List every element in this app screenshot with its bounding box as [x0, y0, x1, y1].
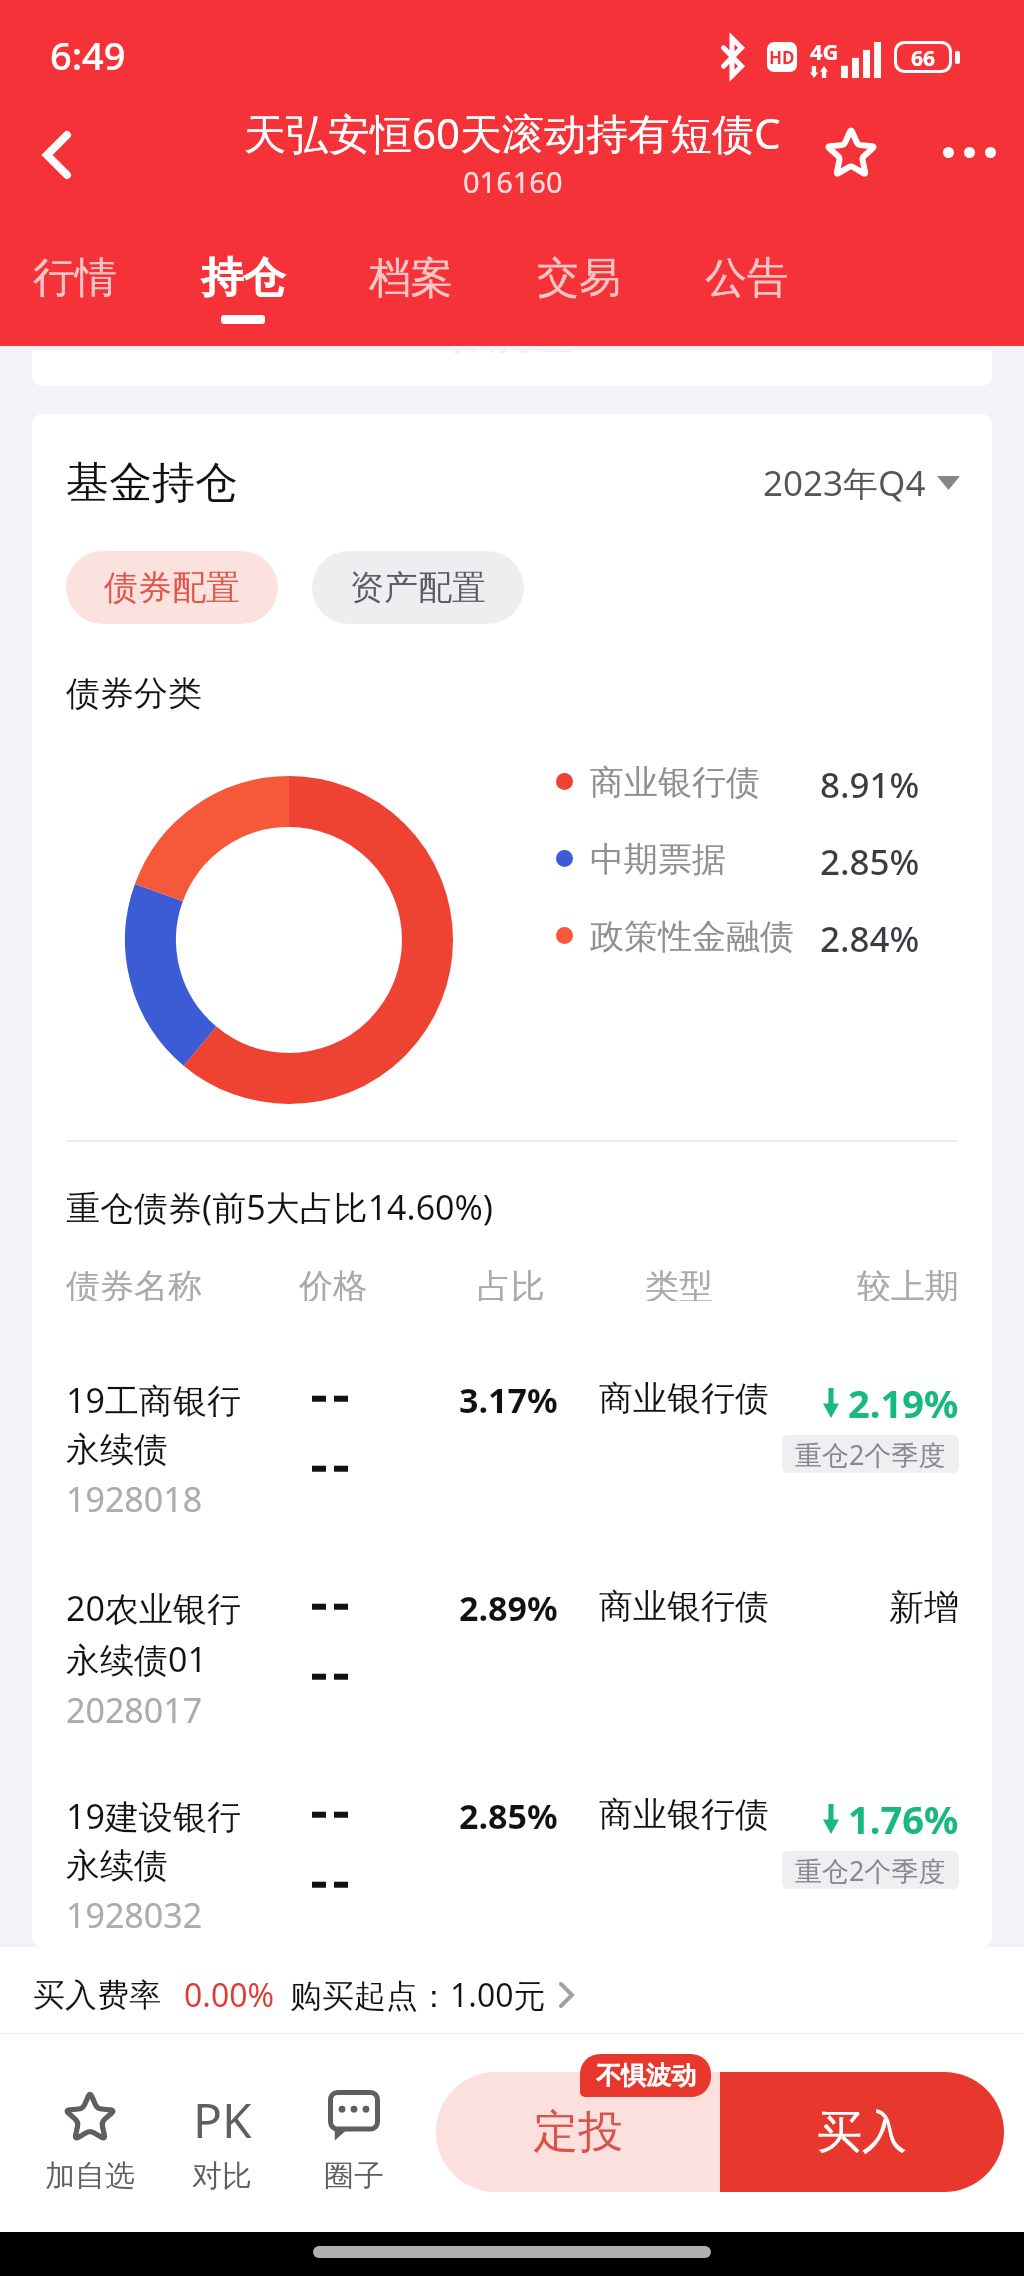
staticText: 永续债01 [66, 1636, 207, 1682]
staticText: 较上期 [857, 1265, 959, 1301]
staticText: 持有收益 [452, 350, 572, 356]
staticText: 1928018 [66, 1476, 203, 1522]
staticText: 定投 [533, 2104, 623, 2161]
button[interactable]: 2023年Q4 [763, 459, 968, 507]
button[interactable]: 档案 [327, 240, 495, 346]
staticText: 政策性金融债 [590, 915, 794, 955]
staticText: 购买起点：1.00元 [290, 1973, 546, 2017]
staticText: 不惧波动 [596, 2060, 696, 2091]
button[interactable]: 买入费率 [0, 1947, 1024, 2033]
staticText: 交易 [537, 252, 621, 305]
staticText: 66 [911, 44, 936, 70]
staticText: 6:49 [50, 29, 126, 81]
staticText: 占比 [477, 1265, 545, 1301]
staticText: 商业银行债 [590, 761, 760, 801]
staticText: 2.89% [459, 1585, 558, 1631]
button[interactable]: 20农业银行 [66, 1585, 968, 1745]
staticText: 价格 [299, 1265, 367, 1301]
staticText: 20农业银行 [66, 1585, 241, 1631]
staticText: 商业银行债 [599, 1585, 769, 1628]
staticText: 0.00% [184, 1973, 275, 2017]
button[interactable]: 加自选 [24, 2087, 156, 2195]
staticText: 公告 [705, 252, 789, 305]
staticText: PK [193, 2087, 251, 2145]
button[interactable]: 买入 [720, 2072, 1004, 2192]
staticText: 买入 [817, 2104, 907, 2161]
staticText: 19建设银行 [66, 1793, 241, 1839]
staticText: 重仓债券(前5大占比14.60%) [66, 1184, 494, 1230]
staticText: 19工商银行 [66, 1377, 241, 1423]
button[interactable]: 资产配置 [312, 551, 524, 624]
button[interactable]: 公告 [663, 240, 831, 346]
staticText: 永续债 [66, 1428, 168, 1471]
button[interactable]: 定投 [436, 2072, 720, 2192]
staticText: 债券配置 [104, 566, 240, 609]
staticText: 2.19% [848, 1377, 959, 1429]
staticText: 基金持仓 [66, 456, 238, 510]
staticText: 4G [810, 36, 839, 66]
button[interactable]: Favorite [806, 107, 896, 197]
staticText: 2.85% [820, 838, 920, 878]
staticText: 商业银行债 [599, 1793, 769, 1836]
staticText: 2.85% [459, 1793, 558, 1839]
staticText: 持仓 [201, 252, 285, 305]
button[interactable]: 债券配置 [66, 551, 278, 624]
staticText: 2.84% [820, 915, 920, 955]
staticText: 新增 [889, 1585, 959, 1629]
staticText: 类型 [645, 1265, 713, 1301]
staticText: 档案 [369, 252, 453, 305]
staticText: 天弘安恒60天滚动持有短债C [244, 104, 781, 161]
button[interactable]: 持仓 [159, 240, 327, 346]
staticText: 商业银行债 [599, 1377, 769, 1420]
staticText: 永续债 [66, 1844, 168, 1887]
button[interactable]: 19建设银行 [66, 1793, 968, 1947]
button[interactable]: Back [0, 87, 114, 223]
button[interactable]: 行情 [0, 240, 159, 346]
button[interactable]: 对比 [156, 2087, 288, 2195]
staticText: 2028017 [66, 1687, 203, 1733]
staticText: 2023年Q4 [763, 459, 926, 507]
staticText: 债券名称 [66, 1265, 202, 1301]
button[interactable]: More options [924, 107, 1014, 197]
staticText: 对比 [192, 2157, 252, 2195]
staticText: 买入费率 [33, 1975, 161, 2015]
staticText: 016160 [463, 162, 563, 201]
staticText: 1.76% [848, 1793, 959, 1845]
staticText: 债券分类 [66, 672, 202, 715]
staticText: 重仓2个季度 [795, 1436, 946, 1473]
button[interactable]: 圈子 [288, 2087, 420, 2195]
staticText: 加自选 [45, 2157, 135, 2195]
button[interactable]: 19工商银行 [66, 1377, 968, 1537]
staticText: HD [769, 46, 795, 69]
staticText: 圈子 [324, 2157, 384, 2195]
staticText: 1928032 [66, 1892, 203, 1938]
staticText: 重仓2个季度 [795, 1852, 946, 1889]
staticText: 行情 [33, 252, 117, 305]
staticText: 中期票据 [590, 838, 726, 878]
staticText: 资产配置 [350, 566, 486, 609]
staticText: 8.91% [820, 761, 920, 801]
button[interactable]: 交易 [495, 240, 663, 346]
staticText: 3.17% [459, 1377, 558, 1423]
